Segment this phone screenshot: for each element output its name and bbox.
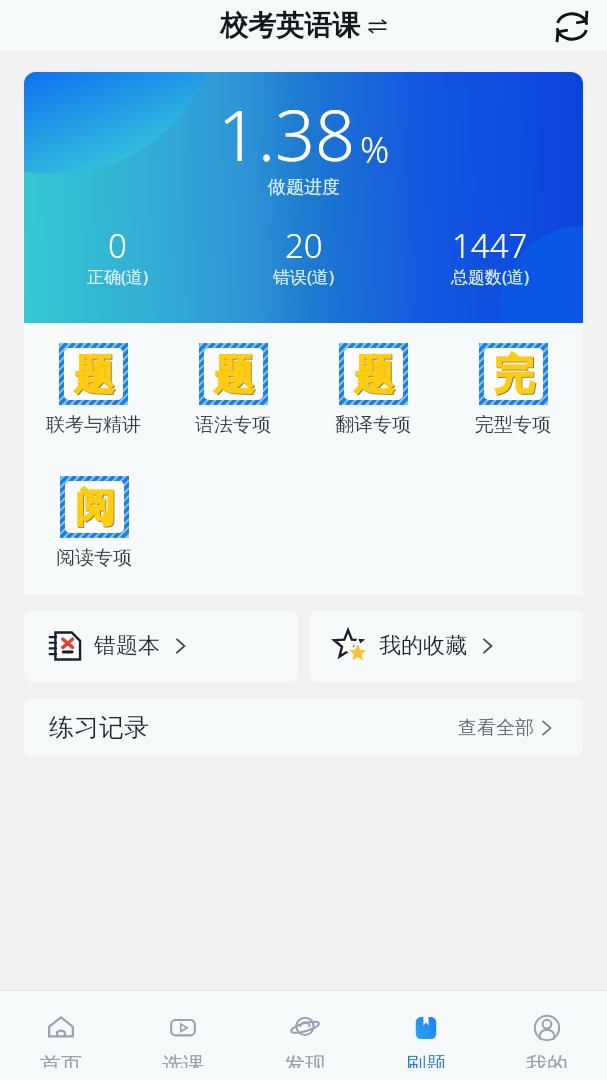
staticText: 错题本 [94,632,160,660]
staticText: % [360,125,390,174]
button[interactable]: 练习记录 [24,699,583,756]
staticText: 选课 [162,1052,204,1068]
button[interactable]: 阅 [24,476,164,570]
staticText: 我的收藏 [379,632,467,660]
button[interactable]: 题 [24,343,163,437]
staticText: 语法专项 [195,413,271,437]
button[interactable]: 发现 [244,991,365,1080]
staticText: 我的 [526,1052,568,1068]
staticText: 查看全部 [458,716,534,740]
staticText: 总题数(道) [451,265,530,288]
staticText: 阅 [75,482,115,532]
staticText: 正确(道) [87,265,149,288]
staticText: 题 [215,350,255,400]
button[interactable]: 刷题 [365,991,486,1080]
staticText: 20 [285,223,323,268]
staticText: 题 [354,349,394,399]
staticText: 题 [355,350,395,400]
button[interactable]: 题 [303,343,443,437]
staticText: 题 [214,349,254,399]
staticText: 完 [495,350,535,400]
staticText: 完型专项 [475,413,551,437]
staticText: 阅读专项 [56,546,132,570]
button[interactable]: Refresh [551,5,593,47]
staticText: 刷题 [405,1052,447,1068]
staticText: 1447 [452,223,528,268]
staticText: 练习记录 [49,712,149,743]
staticText: 1.38 [218,86,355,181]
button[interactable]: 完 [443,343,583,437]
button[interactable]: 我的 [486,991,607,1080]
button[interactable]: 选课 [122,991,244,1080]
button[interactable]: 1.38 [24,72,583,323]
staticText: 完 [494,349,534,399]
staticText: 错误(道) [273,265,335,288]
button[interactable]: 错题本 [24,610,298,682]
staticText: 发现 [284,1052,326,1068]
staticText: 做题进度 [268,176,340,199]
staticText: 阅 [76,483,116,533]
staticText: 题 [74,349,114,399]
staticText: 首页 [40,1052,82,1068]
button[interactable]: 我的收藏 [309,610,583,682]
button[interactable]: 题 [163,343,303,437]
staticText: 题 [75,350,115,400]
staticText: 联考与精讲 [46,413,141,437]
staticText: 校考英语课 [220,8,360,43]
button[interactable]: 首页 [0,991,122,1080]
staticText: 翻译专项 [335,413,411,437]
staticText: 0 [108,223,127,268]
